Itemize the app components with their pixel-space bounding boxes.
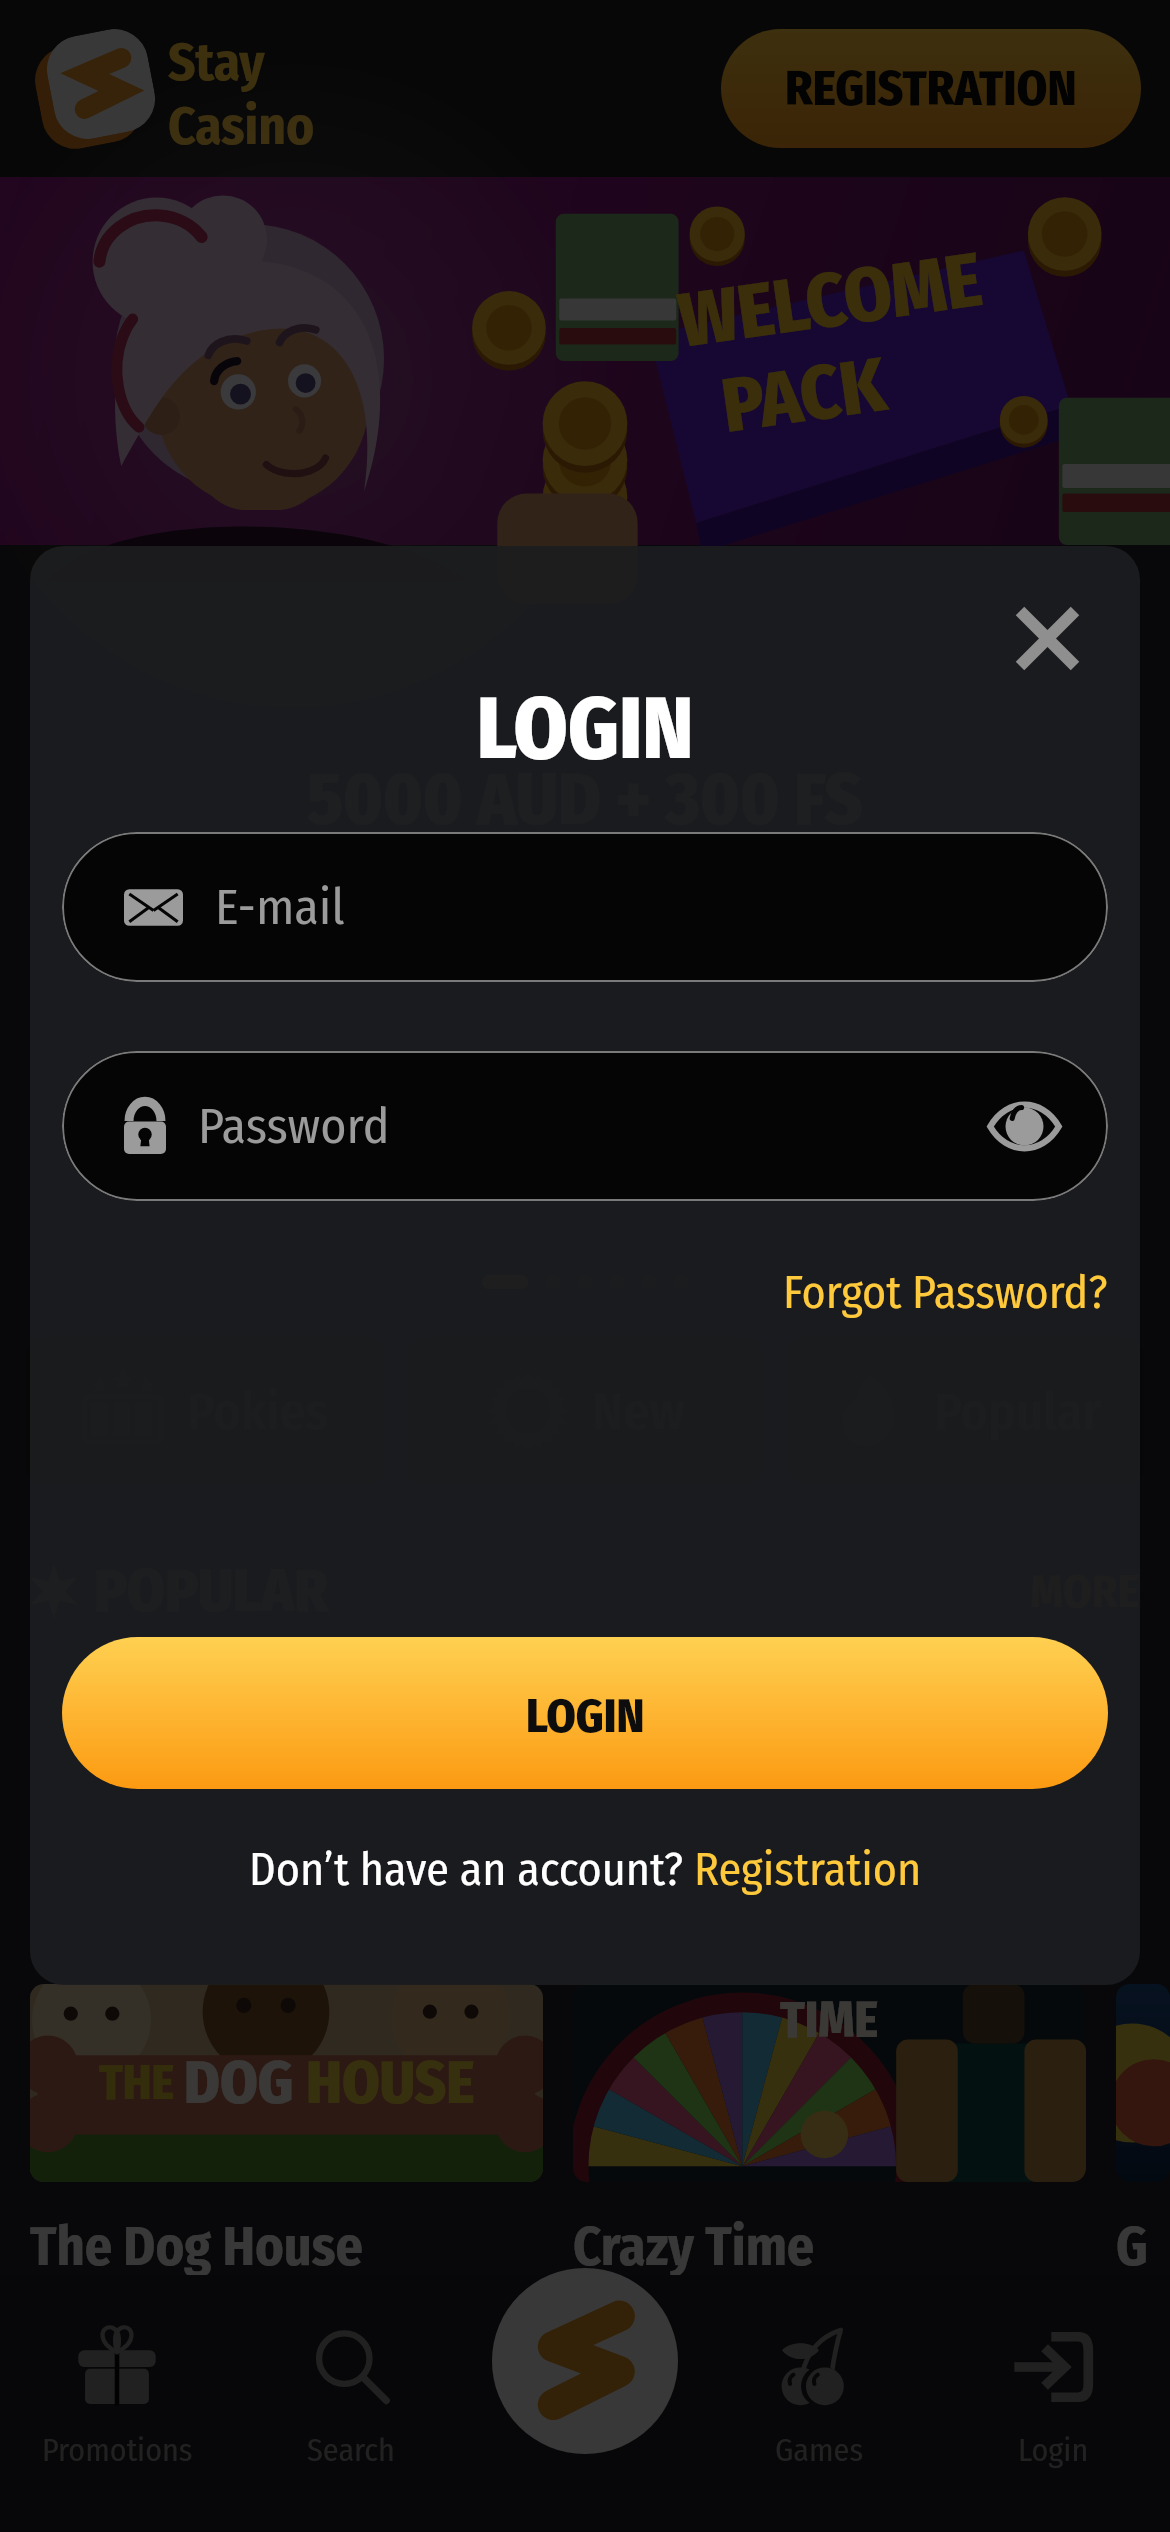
staticText: Login bbox=[1018, 2431, 1089, 2469]
button[interactable]: TIME bbox=[573, 1984, 1086, 2341]
staticText: Don’t have an account? bbox=[249, 1842, 694, 1897]
staticText: Pragmatic Play bbox=[573, 2298, 788, 2341]
button[interactable]: Close bbox=[992, 583, 1102, 693]
staticText: HOUSE bbox=[306, 2047, 475, 2119]
button[interactable]: Forgot Password? bbox=[62, 1259, 1108, 1326]
staticText: PACK bbox=[716, 339, 892, 452]
staticText: Password bbox=[198, 1096, 390, 1156]
button[interactable]: E-mail bbox=[62, 832, 1108, 982]
staticText: Casino bbox=[168, 94, 315, 158]
staticText: Games bbox=[775, 2431, 864, 2469]
button[interactable]: Show password bbox=[986, 1088, 1062, 1164]
staticText: Search bbox=[307, 2431, 395, 2469]
button[interactable]: Password bbox=[62, 1051, 1108, 1201]
button[interactable]: Games bbox=[702, 2275, 936, 2495]
button[interactable]: Search bbox=[234, 2275, 468, 2495]
staticText: E-mail bbox=[215, 877, 345, 937]
button[interactable]: LOGIN bbox=[62, 1637, 1108, 1789]
staticText: REGISTRATION bbox=[785, 59, 1077, 118]
staticText: DOG bbox=[184, 2047, 306, 2119]
staticText: Gates of Olympus bbox=[1116, 2215, 1170, 2280]
button[interactable]: REGISTRATION bbox=[721, 29, 1141, 148]
staticText: Promotions bbox=[42, 2431, 193, 2469]
staticText: LOGIN bbox=[526, 1688, 645, 1744]
button[interactable]: Promotions bbox=[0, 2275, 234, 2495]
button[interactable]: Login bbox=[936, 2275, 1170, 2495]
staticText: The Dog House bbox=[30, 2215, 363, 2280]
button[interactable]: Gates of Olympus bbox=[1116, 1984, 1170, 2513]
button[interactable]: Home bbox=[492, 2268, 678, 2454]
button[interactable]: THE bbox=[30, 1984, 543, 2341]
staticText: TIME bbox=[780, 1990, 879, 2050]
staticText: Crazy Time bbox=[573, 2215, 815, 2280]
staticText: WELCOME bbox=[673, 234, 988, 367]
button[interactable]: Registration bbox=[694, 1842, 922, 1897]
staticText: THE bbox=[99, 2054, 184, 2112]
staticText: Pragmatic Play bbox=[30, 2298, 245, 2341]
staticText: 5000 AUD + 300 FS bbox=[307, 757, 863, 843]
staticText: Stay bbox=[168, 30, 265, 94]
staticText: LOGIN bbox=[62, 678, 1108, 781]
staticText: Forgot Password? bbox=[783, 1265, 1108, 1320]
